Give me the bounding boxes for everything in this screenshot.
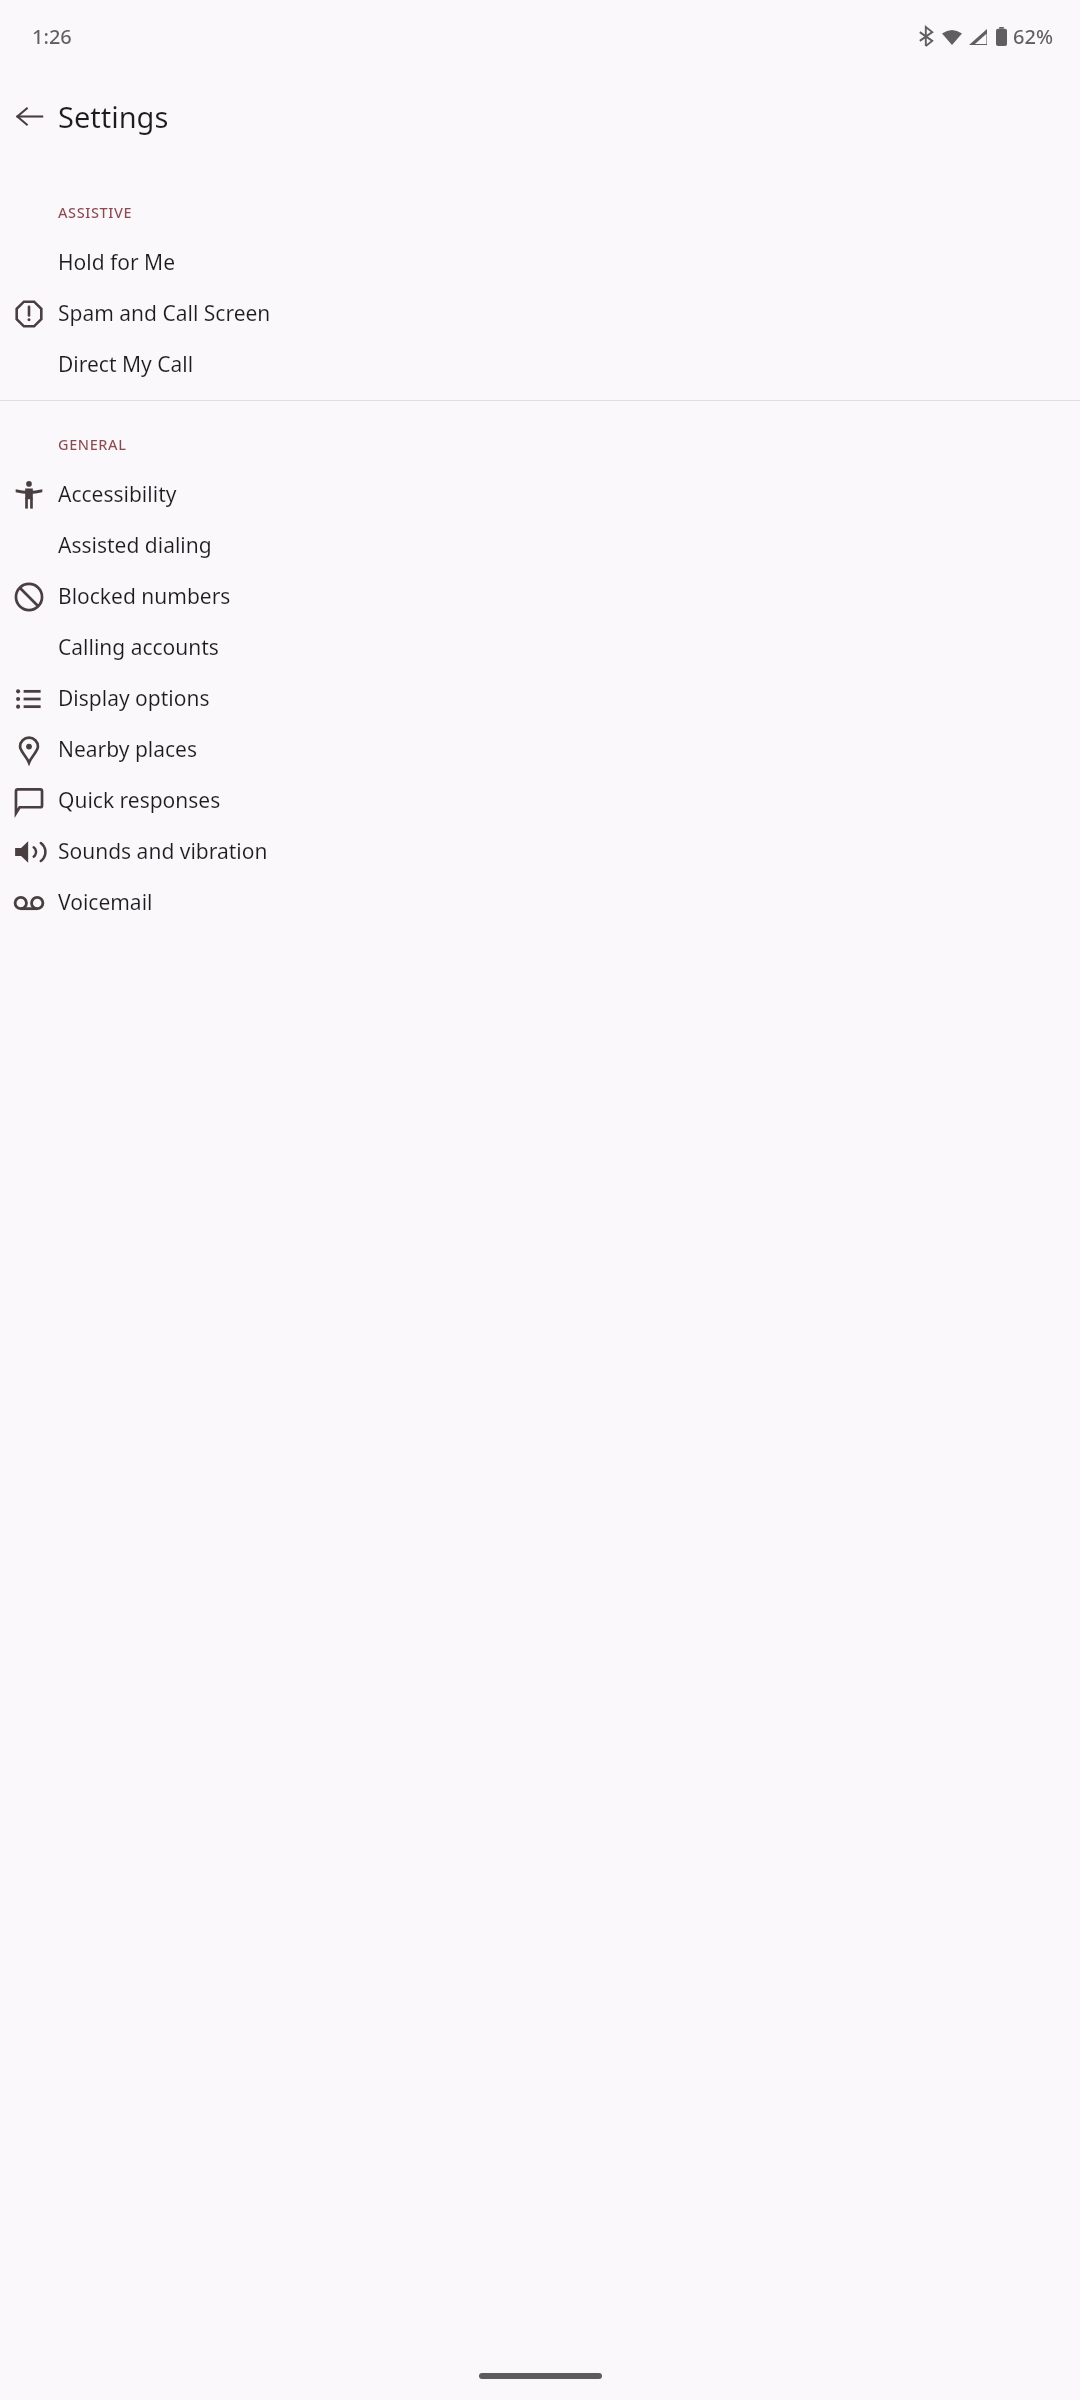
staticText: Accessibility [58, 480, 177, 509]
button[interactable]: Back [0, 73, 58, 159]
button[interactable]: Accessibility [0, 469, 1080, 520]
button[interactable]: Voicemail [0, 877, 1080, 928]
staticText: Hold for Me [58, 248, 176, 277]
staticText: Nearby places [58, 735, 198, 764]
staticText: Settings [58, 97, 169, 136]
staticText: Quick responses [58, 786, 221, 815]
button[interactable]: Calling accounts [0, 622, 1080, 673]
button[interactable]: Quick responses [0, 775, 1080, 826]
staticText: Display options [58, 684, 210, 713]
staticText: GENERAL [58, 434, 127, 454]
staticText: ASSISTIVE [58, 202, 133, 222]
staticText: Direct My Call [58, 350, 194, 379]
button[interactable]: Assisted dialing [0, 520, 1080, 571]
button[interactable]: Nearby places [0, 724, 1080, 775]
staticText: Assisted dialing [58, 531, 212, 560]
staticText: Blocked numbers [58, 582, 231, 611]
button[interactable]: Sounds and vibration [0, 826, 1080, 877]
staticText: Voicemail [58, 888, 153, 917]
staticText: 1:26 [32, 23, 72, 50]
button[interactable]: Display options [0, 673, 1080, 724]
button[interactable]: Hold for Me [0, 237, 1080, 288]
button[interactable]: Spam and Call Screen [0, 288, 1080, 339]
button[interactable]: Blocked numbers [0, 571, 1080, 622]
staticText: 62% [1013, 23, 1053, 50]
staticText: Sounds and vibration [58, 837, 268, 866]
button[interactable]: Direct My Call [0, 339, 1080, 390]
staticText: Spam and Call Screen [58, 299, 271, 328]
staticText: Calling accounts [58, 633, 219, 662]
